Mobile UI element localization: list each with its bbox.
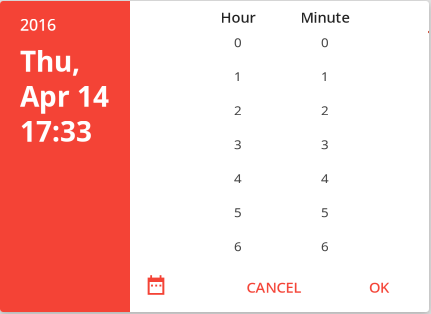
staticText: 1 (234, 67, 242, 85)
staticText: 3 (234, 135, 242, 153)
button[interactable]: 3 (208, 127, 268, 161)
staticText: 17:33 (20, 112, 92, 149)
staticText: Apr 14 (20, 77, 109, 114)
staticText: Thu, (20, 42, 80, 79)
button[interactable]: 0 (208, 25, 268, 59)
button[interactable]: 5 (295, 195, 355, 229)
staticText: 2016 (20, 14, 56, 35)
staticText: 4 (321, 169, 329, 187)
staticText: Hour (220, 7, 255, 27)
staticText: CANCEL (246, 277, 301, 297)
button[interactable]: 4 (295, 161, 355, 195)
staticText: 5 (321, 203, 329, 221)
button[interactable]: 1 (295, 59, 355, 93)
button[interactable]: 3 (295, 127, 355, 161)
staticText: 4 (234, 169, 242, 187)
button[interactable]: 2 (295, 93, 355, 127)
staticText: 1 (321, 67, 329, 85)
button[interactable]: Switch to calendar view (137, 266, 175, 304)
button[interactable]: 2 (208, 93, 268, 127)
button[interactable]: 6 (295, 229, 355, 263)
staticText: 5 (234, 203, 242, 221)
staticText: 6 (321, 237, 329, 255)
staticText: 2 (234, 101, 242, 119)
staticText: Minute (300, 7, 349, 27)
staticText: 0 (234, 33, 242, 51)
staticText: 3 (321, 135, 329, 153)
staticText: 0 (321, 33, 329, 51)
staticText: 6 (234, 237, 242, 255)
button[interactable]: 5 (208, 195, 268, 229)
button[interactable]: 0 (295, 25, 355, 59)
button[interactable]: 4 (208, 161, 268, 195)
staticText: 2 (321, 101, 329, 119)
staticText: OK (369, 277, 389, 297)
button[interactable]: CANCEL (237, 270, 311, 304)
button[interactable]: 1 (208, 59, 268, 93)
button[interactable]: OK (342, 270, 416, 304)
button[interactable]: 6 (208, 229, 268, 263)
